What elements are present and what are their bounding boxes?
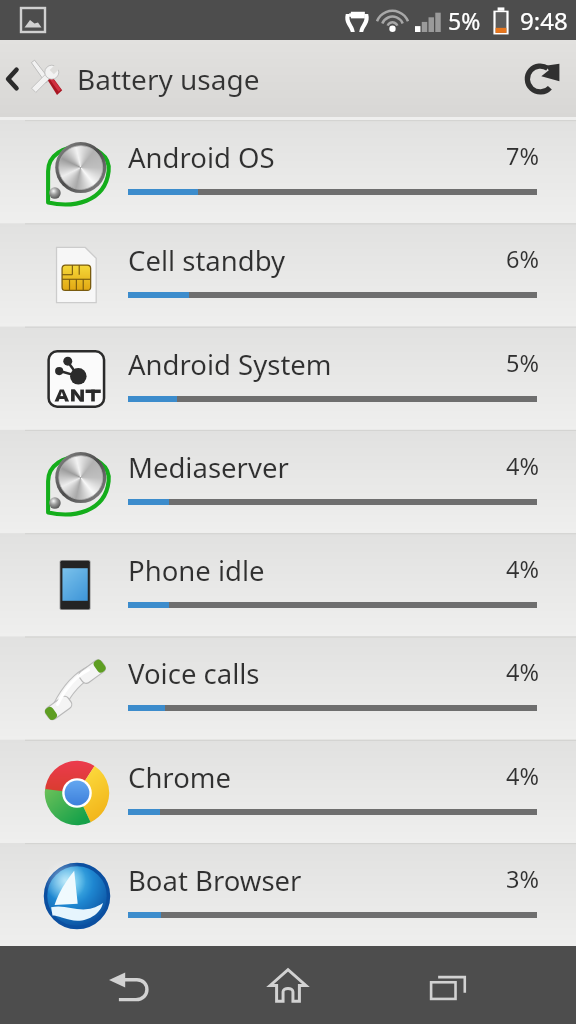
staticText: Cell standby: [128, 242, 286, 279]
button[interactable]: Android System: [0, 327, 576, 430]
staticText: Android System: [128, 346, 332, 383]
staticText: 4%: [506, 656, 539, 688]
button[interactable]: Mediaserver: [0, 430, 576, 533]
staticText: 9:48: [520, 4, 568, 37]
staticText: Android OS: [128, 139, 275, 176]
staticText: Mediaserver: [128, 449, 289, 486]
staticText: 4%: [506, 450, 539, 482]
staticText: Chrome: [128, 759, 232, 796]
staticText: 6%: [506, 243, 539, 275]
button[interactable]: Battery usage: [0, 40, 260, 117]
staticText: Boat Browser: [128, 862, 302, 899]
staticText: Voice calls: [128, 655, 260, 692]
staticText: 4%: [506, 760, 539, 792]
button[interactable]: Phone idle: [0, 533, 576, 636]
staticText: 5%: [448, 5, 481, 36]
button[interactable]: Boat Browser: [0, 843, 576, 946]
button[interactable]: Refresh: [514, 40, 576, 117]
button[interactable]: Android OS: [0, 120, 576, 223]
button[interactable]: Back: [69, 946, 189, 1024]
staticText: 5%: [506, 347, 539, 379]
button[interactable]: Voice calls: [0, 636, 576, 739]
button[interactable]: Recent apps: [388, 946, 508, 1024]
button[interactable]: Home: [228, 946, 348, 1024]
staticText: Phone idle: [128, 552, 265, 589]
staticText: 7%: [506, 140, 539, 172]
staticText: 4%: [506, 553, 539, 585]
button[interactable]: Chrome: [0, 740, 576, 843]
staticText: 3%: [506, 863, 539, 895]
button[interactable]: Cell standby: [0, 223, 576, 326]
staticText: Battery usage: [77, 60, 260, 98]
